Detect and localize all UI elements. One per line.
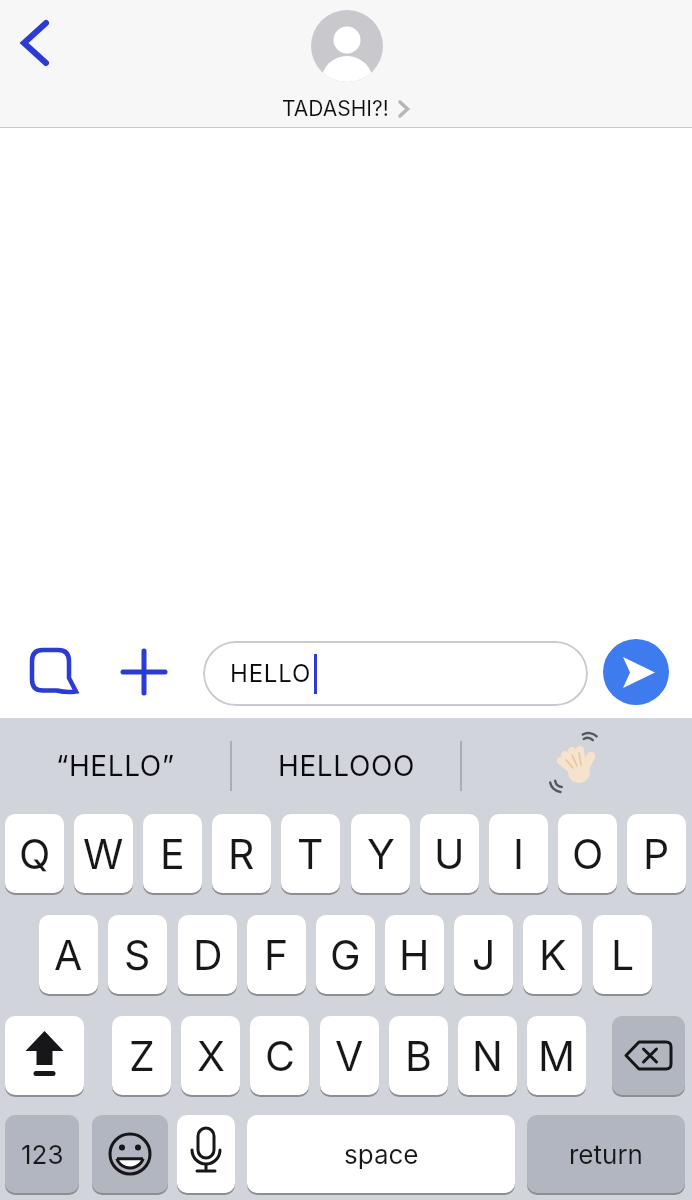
button[interactable]: TADASHI?! — [282, 96, 410, 121]
button[interactable]: K — [523, 915, 582, 994]
button[interactable]: X — [181, 1016, 240, 1095]
staticText: F — [264, 930, 289, 980]
staticText: J — [472, 930, 496, 980]
button[interactable]: M — [527, 1016, 586, 1095]
button[interactable]: return — [527, 1115, 685, 1193]
button[interactable]: Q — [5, 814, 64, 893]
button[interactable]: B — [389, 1016, 448, 1095]
button[interactable] — [311, 10, 383, 82]
staticText: HELLOOO — [278, 749, 415, 783]
staticText: E — [160, 829, 185, 879]
button[interactable]: R — [212, 814, 271, 893]
staticText: K — [539, 930, 567, 980]
button[interactable]: E — [143, 814, 202, 893]
staticText: P — [643, 829, 670, 879]
button[interactable]: I — [489, 814, 548, 893]
staticText: U — [434, 829, 465, 879]
button[interactable]: “HELLO” — [0, 718, 231, 814]
button[interactable]: F — [247, 915, 306, 994]
staticText: C — [265, 1031, 295, 1081]
button[interactable] — [177, 1115, 235, 1193]
staticText: space — [344, 1139, 419, 1170]
staticText: Q — [19, 829, 51, 879]
staticText: Y — [367, 829, 395, 879]
staticText: A — [54, 930, 83, 980]
button[interactable]: Z — [112, 1016, 171, 1095]
button[interactable] — [28, 646, 80, 700]
button[interactable]: J — [454, 915, 513, 994]
staticText: “HELLO” — [56, 749, 175, 783]
button[interactable]: O — [558, 814, 617, 893]
button[interactable]: space — [247, 1115, 515, 1193]
button[interactable]: L — [593, 915, 652, 994]
staticText: O — [572, 829, 604, 879]
button[interactable]: HELLOOO — [231, 718, 461, 814]
button[interactable] — [10, 14, 60, 72]
staticText: H — [399, 930, 430, 980]
button[interactable] — [603, 639, 669, 705]
staticText: return — [569, 1139, 643, 1170]
button[interactable]: H — [385, 915, 444, 994]
staticText: W — [83, 829, 124, 879]
staticText: L — [611, 930, 635, 980]
button[interactable]: W — [74, 814, 133, 893]
staticText: B — [405, 1031, 432, 1081]
staticText: N — [472, 1031, 503, 1081]
button[interactable] — [5, 1016, 84, 1095]
button[interactable]: S — [108, 915, 167, 994]
button[interactable]: N — [458, 1016, 517, 1095]
button[interactable]: V — [320, 1016, 379, 1095]
staticText: T — [297, 829, 324, 879]
button[interactable]: A — [39, 915, 98, 994]
button[interactable] — [122, 650, 166, 694]
button[interactable] — [612, 1016, 685, 1095]
button[interactable]: G — [316, 915, 375, 994]
button[interactable]: Y — [351, 814, 410, 893]
button[interactable]: 123 — [5, 1115, 79, 1193]
button[interactable]: C — [250, 1016, 309, 1095]
staticText: Z — [129, 1031, 155, 1081]
staticText: V — [335, 1031, 364, 1081]
staticText: TADASHI?! — [282, 96, 389, 121]
staticText: D — [193, 930, 223, 980]
button[interactable]: P — [627, 814, 686, 893]
staticText: R — [228, 829, 255, 879]
button[interactable]: HELLO — [203, 641, 588, 706]
staticText: X — [197, 1031, 225, 1081]
staticText: G — [330, 930, 361, 980]
staticText: M — [538, 1031, 576, 1081]
staticText: S — [124, 930, 151, 980]
staticText: HELLO — [230, 659, 312, 688]
button[interactable] — [461, 718, 692, 814]
button[interactable]: T — [281, 814, 340, 893]
staticText: I — [513, 829, 525, 879]
button[interactable] — [92, 1115, 168, 1193]
button[interactable]: U — [420, 814, 479, 893]
staticText: 123 — [21, 1139, 64, 1170]
button[interactable]: D — [178, 915, 237, 994]
